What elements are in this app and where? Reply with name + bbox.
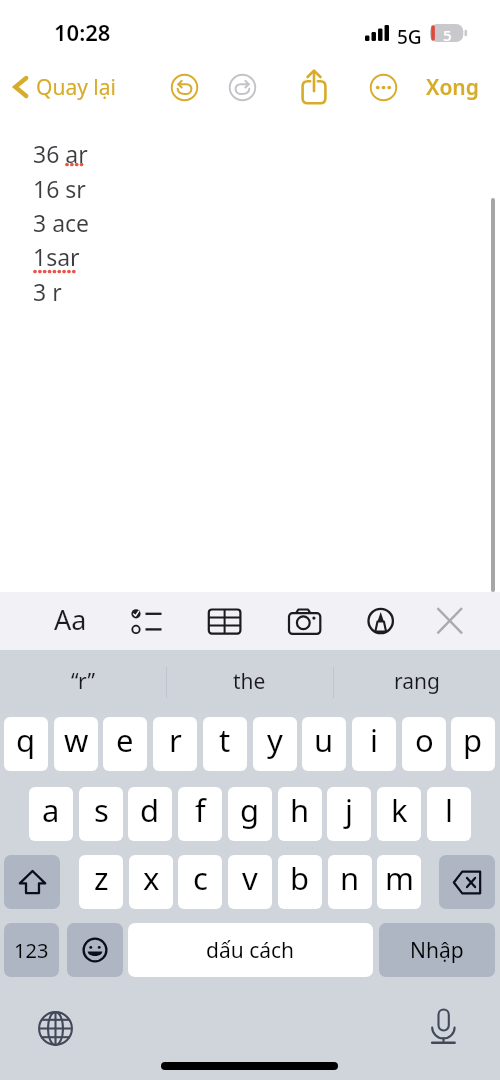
staticText: 3 r bbox=[33, 276, 62, 307]
staticText: s bbox=[94, 789, 109, 831]
button[interactable]: Table bbox=[207, 605, 241, 635]
button[interactable]: Close keyboard bbox=[437, 605, 471, 635]
button[interactable]: o bbox=[402, 717, 446, 771]
button[interactable]: Checklist bbox=[128, 605, 162, 635]
staticText: v bbox=[242, 857, 258, 899]
button[interactable]: Undo bbox=[166, 69, 203, 106]
button[interactable]: x bbox=[129, 855, 173, 909]
staticText: rang bbox=[394, 667, 440, 696]
staticText: j bbox=[345, 789, 353, 831]
button[interactable]: Emoji bbox=[67, 923, 123, 977]
button[interactable]: u bbox=[302, 717, 346, 771]
button[interactable]: d bbox=[128, 787, 172, 841]
staticText: dấu cách bbox=[206, 936, 295, 965]
button[interactable]: Dictation bbox=[431, 1008, 456, 1043]
staticText: d bbox=[140, 789, 160, 831]
button[interactable]: s bbox=[79, 787, 123, 841]
button[interactable]: Delete bbox=[439, 855, 495, 909]
staticText: f bbox=[195, 789, 206, 831]
staticText: l bbox=[445, 789, 453, 831]
button[interactable]: Nhập bbox=[379, 923, 495, 977]
staticText: q bbox=[16, 719, 36, 761]
button[interactable]: q bbox=[4, 717, 48, 771]
staticText: e bbox=[116, 719, 134, 761]
button[interactable]: Xong bbox=[418, 58, 487, 116]
staticText: 16 sr bbox=[33, 173, 86, 204]
staticText: i bbox=[370, 719, 378, 761]
staticText: c bbox=[193, 857, 208, 899]
staticText: k bbox=[391, 789, 408, 831]
staticText: a bbox=[42, 789, 60, 831]
staticText: b bbox=[290, 857, 310, 899]
staticText: g bbox=[240, 789, 260, 831]
button[interactable]: t bbox=[203, 717, 247, 771]
button[interactable]: n bbox=[328, 855, 372, 909]
staticText: “r” bbox=[71, 667, 95, 696]
staticText: n bbox=[340, 857, 360, 899]
button[interactable]: e bbox=[103, 717, 147, 771]
button[interactable]: g bbox=[228, 787, 272, 841]
button[interactable]: m bbox=[377, 855, 421, 909]
button[interactable]: j bbox=[327, 787, 371, 841]
staticText: 3 ace bbox=[33, 207, 90, 238]
button[interactable]: Aa bbox=[48, 600, 92, 638]
button[interactable]: rang bbox=[333, 650, 500, 713]
staticText: Aa bbox=[54, 601, 87, 638]
staticText: m bbox=[385, 857, 414, 899]
staticText: u bbox=[314, 719, 334, 761]
button[interactable]: 123 bbox=[4, 923, 59, 977]
staticText: 1sar bbox=[33, 241, 80, 272]
button[interactable]: Markup bbox=[367, 605, 401, 635]
staticText: w bbox=[64, 719, 89, 761]
button[interactable]: Change keyboard language bbox=[38, 1011, 73, 1046]
button[interactable]: z bbox=[79, 855, 123, 909]
button[interactable]: “r” bbox=[0, 650, 166, 713]
button[interactable]: More bbox=[365, 69, 402, 106]
button[interactable]: Shift bbox=[4, 855, 60, 909]
staticText: r bbox=[169, 719, 182, 761]
button[interactable]: p bbox=[451, 717, 495, 771]
button[interactable]: i bbox=[352, 717, 396, 771]
staticText: h bbox=[290, 789, 310, 831]
button[interactable]: f bbox=[178, 787, 222, 841]
button[interactable]: Camera bbox=[288, 605, 322, 635]
staticText: 5 bbox=[443, 25, 452, 43]
button[interactable]: l bbox=[427, 787, 471, 841]
button[interactable]: b bbox=[278, 855, 322, 909]
button[interactable]: k bbox=[377, 787, 421, 841]
button[interactable]: Redo bbox=[224, 69, 261, 106]
button[interactable]: y bbox=[253, 717, 297, 771]
button[interactable]: dấu cách bbox=[128, 923, 373, 977]
staticText: Xong bbox=[426, 73, 479, 102]
staticText: Quay lại bbox=[36, 73, 116, 102]
staticText: Nhập bbox=[410, 936, 464, 965]
staticText: x bbox=[143, 857, 160, 899]
staticText: the bbox=[233, 667, 266, 696]
staticText: p bbox=[463, 719, 483, 761]
button[interactable]: a bbox=[29, 787, 73, 841]
staticText: y bbox=[267, 719, 283, 761]
button[interactable]: c bbox=[178, 855, 222, 909]
button[interactable]: the bbox=[166, 650, 333, 713]
button[interactable]: Share bbox=[295, 66, 333, 104]
staticText: z bbox=[94, 857, 109, 899]
button[interactable]: h bbox=[278, 787, 322, 841]
button[interactable]: w bbox=[54, 717, 98, 771]
button[interactable]: Quay lại bbox=[8, 58, 124, 116]
staticText: 10:28 bbox=[54, 17, 111, 47]
button[interactable]: r bbox=[153, 717, 197, 771]
staticText: 5G bbox=[397, 24, 422, 50]
staticText: o bbox=[415, 719, 434, 761]
staticText: t bbox=[219, 719, 231, 761]
button[interactable]: v bbox=[228, 855, 272, 909]
staticText: 123 bbox=[14, 937, 49, 964]
staticText: 36 ar bbox=[33, 138, 88, 169]
